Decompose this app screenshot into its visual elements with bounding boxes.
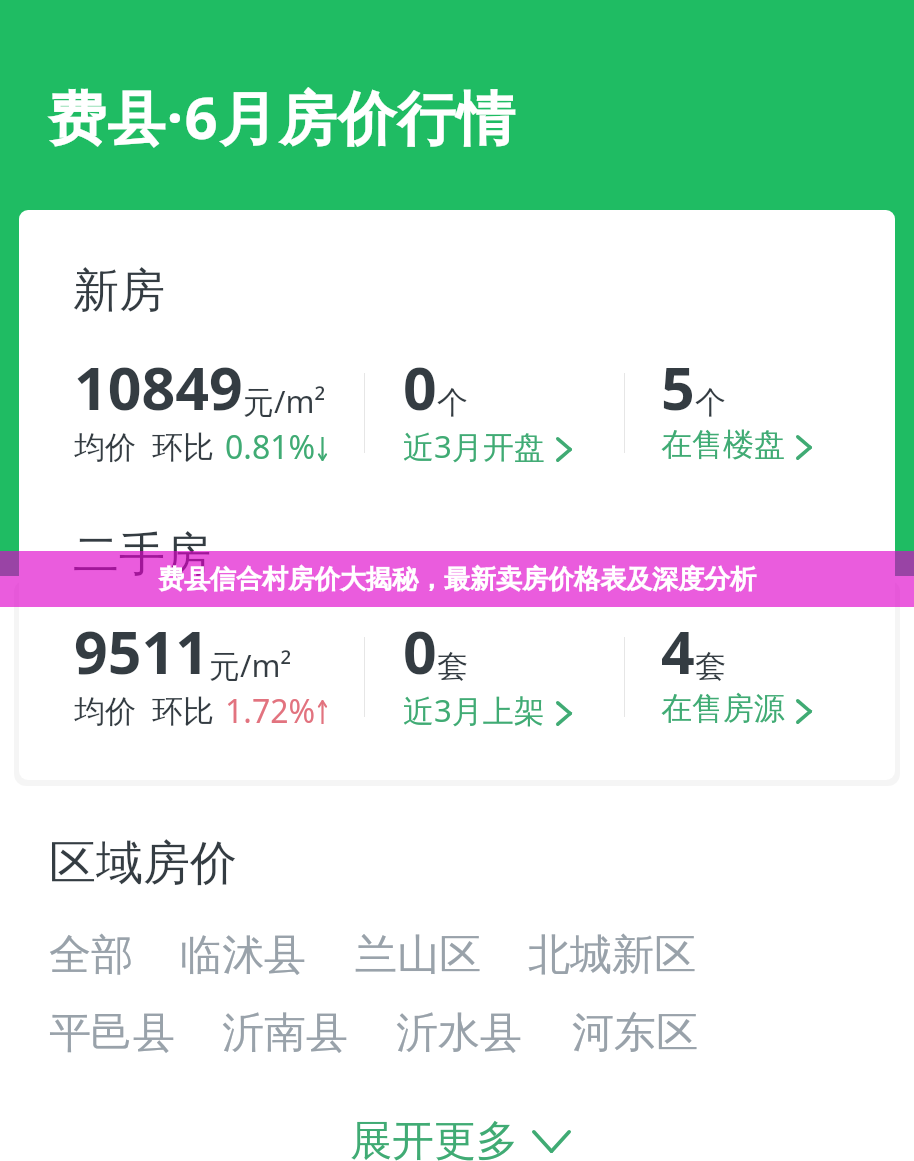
staticText: 元/m² xyxy=(209,644,292,686)
staticText: 沂南县 xyxy=(222,1007,348,1060)
staticText: 近3月开盘 xyxy=(403,425,545,467)
staticText: 个 xyxy=(437,383,468,422)
button[interactable]: 兰山区 xyxy=(347,919,489,992)
staticText: 均价 xyxy=(74,692,136,731)
button[interactable]: 展开更多 xyxy=(3,1103,914,1161)
staticText: 均价 xyxy=(74,428,136,467)
staticText: 沂水县 xyxy=(396,1007,522,1060)
staticText: 环比 xyxy=(152,692,214,731)
staticText: 平邑县 xyxy=(49,1007,175,1060)
staticText: 元/m² xyxy=(243,380,326,422)
staticText: 套 xyxy=(695,647,726,686)
staticText: 0 xyxy=(403,347,437,427)
button[interactable]: 近3月上架 xyxy=(403,611,572,733)
staticText: 河东区 xyxy=(572,1007,698,1060)
staticText: 费县·6月房价行情 xyxy=(48,77,517,156)
staticText: 环比 xyxy=(152,428,214,467)
button[interactable]: 北城新区 xyxy=(520,919,704,992)
staticText: 10849 xyxy=(74,347,243,427)
staticText: 兰山区 xyxy=(355,929,481,982)
staticText: 近3月上架 xyxy=(403,689,545,731)
button[interactable]: 沂水县 xyxy=(388,997,530,1070)
staticText: 在售楼盘 xyxy=(661,425,785,464)
staticText: 1.72% xyxy=(225,689,316,733)
staticText: 4 xyxy=(661,611,695,691)
staticText: 个 xyxy=(695,383,726,422)
button[interactable]: 在售楼盘 xyxy=(661,347,812,466)
staticText: 套 xyxy=(437,647,468,686)
staticText: 0.81% xyxy=(225,425,316,469)
button[interactable]: 河东区 xyxy=(564,997,706,1070)
staticText: 0 xyxy=(403,611,437,691)
staticText: 北城新区 xyxy=(528,929,696,982)
staticText: 9511 xyxy=(74,611,209,691)
staticText: 全部 xyxy=(49,929,133,982)
button[interactable]: 在售房源 xyxy=(661,611,812,730)
staticText: 5 xyxy=(661,347,695,427)
button[interactable]: 临沭县 xyxy=(172,919,314,992)
staticText: 区域房价 xyxy=(49,834,237,893)
button[interactable]: 全部 xyxy=(41,919,141,992)
staticText: 二手房 xyxy=(73,526,211,584)
staticText: 临沭县 xyxy=(180,929,306,982)
button[interactable]: 沂南县 xyxy=(214,997,356,1070)
staticText: 展开更多 xyxy=(350,1115,518,1161)
button[interactable]: 新房均价 环比 0.81% 下降 xyxy=(74,347,328,471)
button[interactable]: 二手房均价 环比 1.72% 上涨 xyxy=(74,611,328,735)
button[interactable]: 平邑县 xyxy=(41,997,183,1070)
staticText: 费县信合村房价大揭秘，最新卖房价格表及深度分析 xyxy=(158,563,756,596)
button[interactable]: 近3月开盘 xyxy=(403,347,572,469)
staticText: 在售房源 xyxy=(661,689,785,728)
staticText: 新房 xyxy=(73,262,165,320)
button[interactable]: 费县信合村房价大揭秘，最新卖房价格表及深度分析 xyxy=(0,551,914,607)
